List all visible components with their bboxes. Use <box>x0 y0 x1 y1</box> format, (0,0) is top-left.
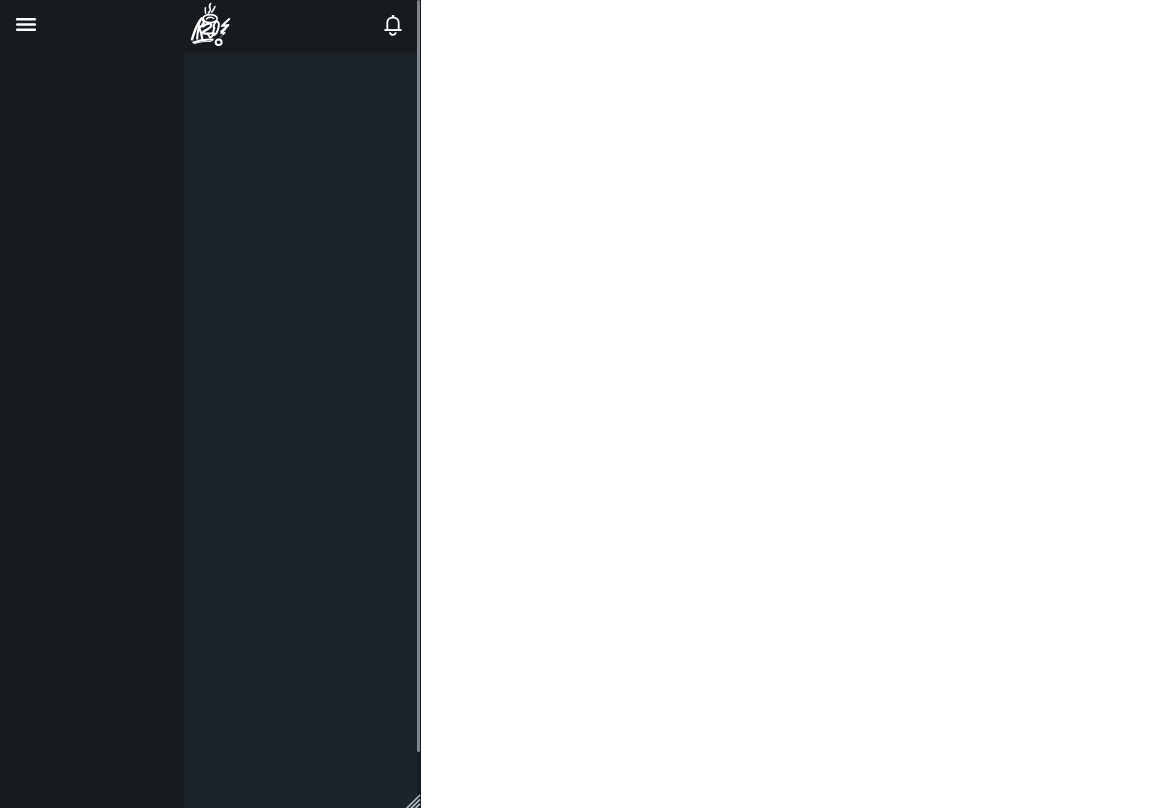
button[interactable]: Home <box>188 1 232 47</box>
button[interactable]: Notifications <box>373 4 413 44</box>
button[interactable]: Menu <box>4 2 48 46</box>
